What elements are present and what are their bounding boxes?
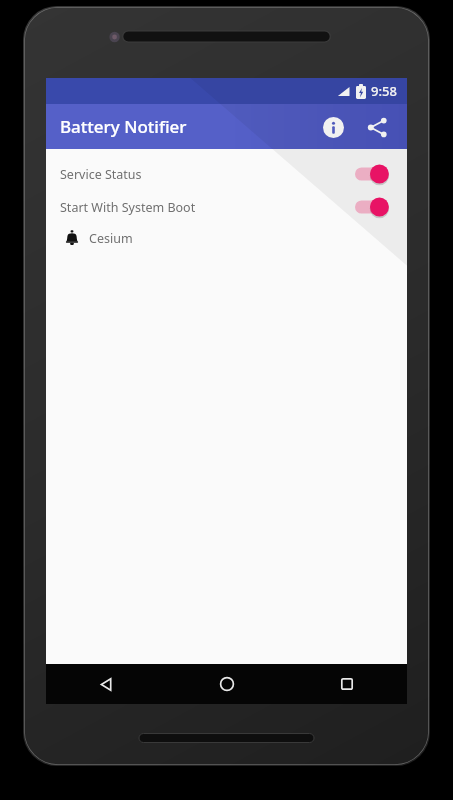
button[interactable]: Toggle [355,163,393,185]
staticText: Start With System Boot [60,199,196,216]
button[interactable]: Toggle [355,196,393,218]
button[interactable]: Service Status [46,161,407,187]
button[interactable]: Start With System Boot [46,194,407,220]
button[interactable]: Recents [287,664,407,704]
button[interactable]: Back [46,664,167,704]
button[interactable]: Share [355,105,399,149]
staticText: 9:58 [371,82,397,100]
button[interactable]: About [311,105,355,149]
staticText: Cesium [89,230,133,247]
staticText: Service Status [60,166,142,183]
button[interactable]: Home [167,664,287,704]
button[interactable]: Cesium [46,224,407,252]
staticText: Battery Notifier [60,115,187,138]
